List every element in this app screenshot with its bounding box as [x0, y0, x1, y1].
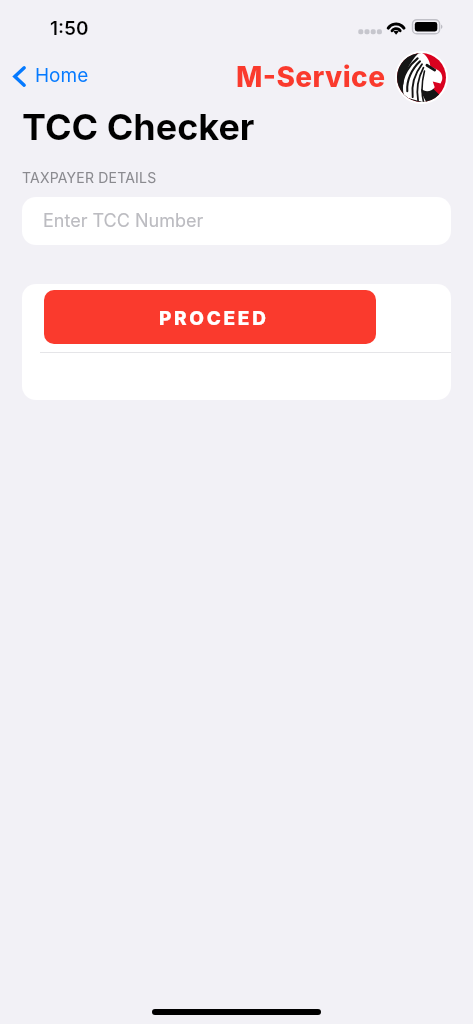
- button[interactable]: Enter TCC Number: [22, 197, 451, 245]
- staticText: TCC Checker: [22, 105, 255, 149]
- staticText: PROCEED: [159, 307, 269, 330]
- staticText: Home: [35, 64, 89, 87]
- staticText: M-Service: [236, 60, 386, 94]
- staticText: TAXPAYER DETAILS: [22, 169, 157, 186]
- staticText: Enter TCC Number: [43, 210, 204, 232]
- button[interactable]: PROCEED: [44, 290, 376, 344]
- other: M-Service logo: [395, 51, 448, 104]
- staticText: 1:50: [50, 17, 89, 40]
- button[interactable]: Home: [9, 61, 93, 92]
